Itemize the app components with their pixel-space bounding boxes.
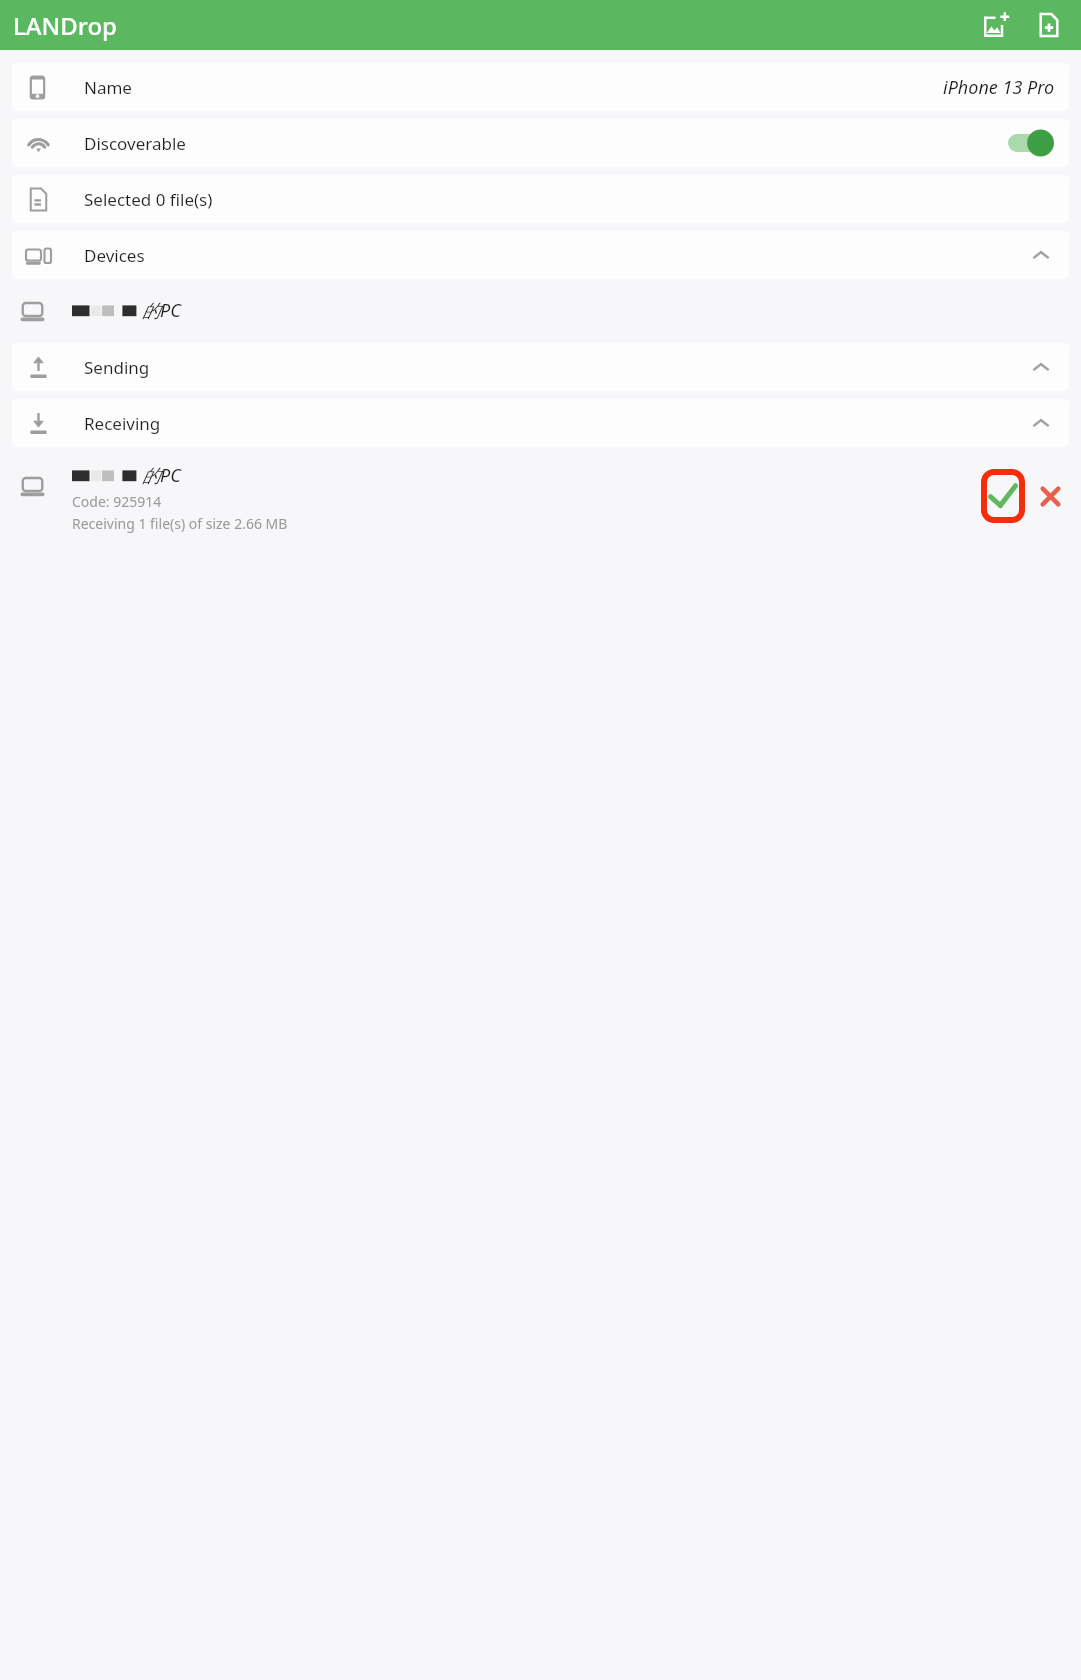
- button[interactable]: Discoverable toggle: [1007, 128, 1055, 158]
- button[interactable]: Discoverable: [12, 119, 1069, 167]
- staticText: Receiving: [84, 412, 161, 435]
- staticText: Sending: [84, 356, 150, 379]
- button[interactable]: Selected 0 file(s): [12, 175, 1069, 223]
- staticText: 的PC: [142, 463, 181, 488]
- staticText: Selected 0 file(s): [84, 188, 213, 211]
- button[interactable]: Add image: [975, 3, 1019, 47]
- staticText: 的PC: [142, 298, 181, 323]
- staticText: Devices: [84, 244, 145, 267]
- button[interactable]: Accept transfer: [981, 469, 1025, 523]
- staticText: LANDrop: [13, 9, 117, 42]
- button[interactable]: Devices: [12, 231, 1069, 279]
- staticText: Discoverable: [84, 132, 186, 155]
- button[interactable]: Reject transfer: [1029, 475, 1071, 517]
- button[interactable]: 的PC: [0, 287, 1081, 333]
- button[interactable]: Add file: [1027, 3, 1071, 47]
- button[interactable]: 的PC: [0, 455, 1081, 543]
- button[interactable]: Name: [12, 63, 1069, 111]
- button[interactable]: Sending: [12, 343, 1069, 391]
- button[interactable]: Receiving: [12, 399, 1069, 447]
- staticText: Receiving 1 file(s) of size 2.66 MB: [72, 514, 288, 533]
- staticText: iPhone 13 Pro: [943, 75, 1055, 100]
- staticText: Name: [84, 76, 132, 99]
- staticText: Code: 925914: [72, 492, 162, 511]
